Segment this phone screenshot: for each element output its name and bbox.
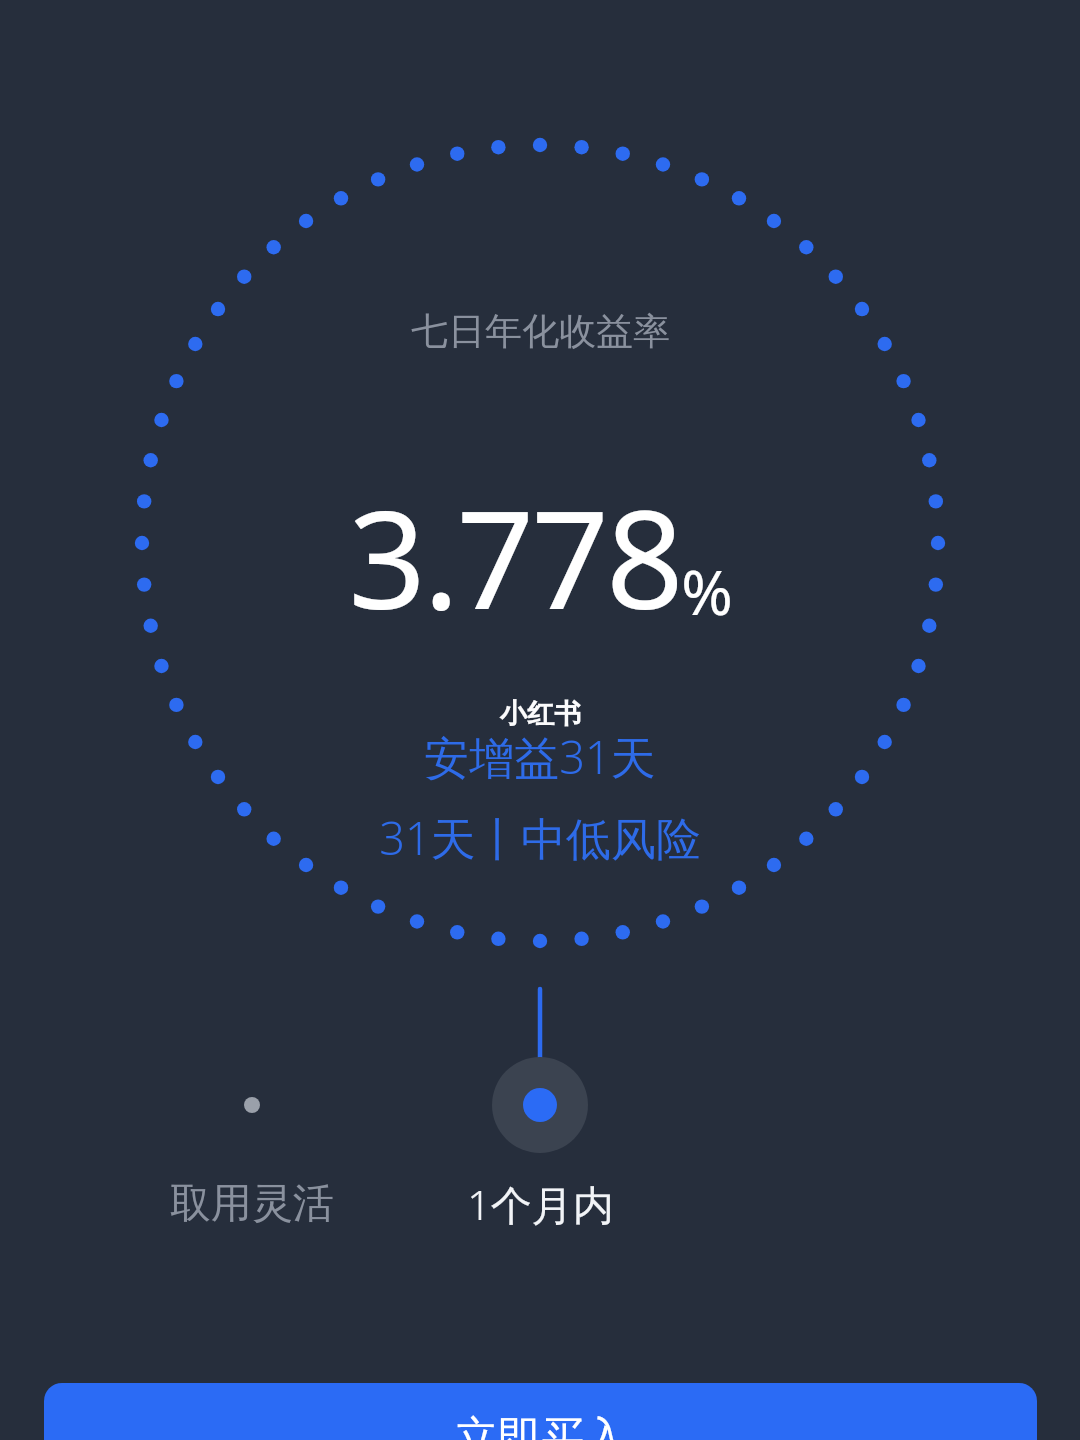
staticText: 3.778	[348, 464, 681, 649]
staticText: %	[681, 549, 733, 633]
button[interactable]: 取用灵活	[132, 1166, 372, 1242]
staticText: 31天丨中低风险	[379, 807, 701, 868]
staticText: 七日年化收益率	[411, 308, 670, 355]
button[interactable]: 1个月内	[420, 1166, 660, 1242]
staticText: 安增益31天	[424, 726, 656, 787]
staticText: 小红书	[500, 697, 581, 731]
staticText: 立即买入	[455, 1411, 627, 1440]
staticText: 1个月内	[467, 1176, 614, 1232]
staticText: 取用灵活	[170, 1178, 334, 1230]
button[interactable]: 立即买入	[44, 1383, 1037, 1440]
